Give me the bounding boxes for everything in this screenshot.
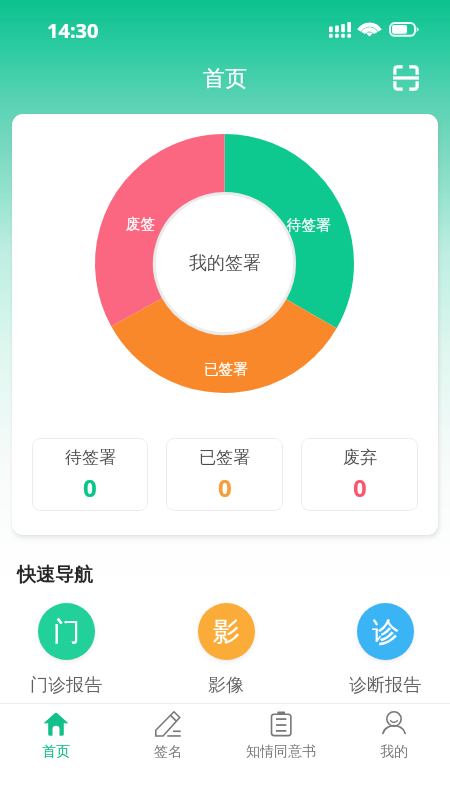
staticText: 待签署: [65, 447, 116, 468]
staticText: 我的签署: [189, 252, 261, 275]
staticText: 影: [213, 615, 240, 649]
staticText: 首页: [203, 65, 247, 93]
staticText: 我的: [380, 743, 408, 761]
button[interactable]: 知情同意书: [224, 704, 337, 761]
staticText: 待签署: [287, 216, 331, 234]
button[interactable]: 废弃: [301, 438, 418, 511]
staticText: 0: [218, 471, 232, 504]
staticText: 0: [83, 471, 97, 504]
staticText: 签名: [154, 743, 182, 761]
staticText: 首页: [42, 743, 70, 761]
button[interactable]: Scan QR code: [393, 65, 419, 91]
button[interactable]: 首页: [0, 704, 112, 761]
staticText: 知情同意书: [246, 743, 316, 761]
staticText: 已签署: [204, 360, 248, 378]
staticText: 门: [53, 615, 80, 649]
staticText: 门诊报告: [30, 674, 102, 697]
button[interactable]: 我的: [337, 704, 450, 761]
button[interactable]: 诊: [330, 603, 440, 697]
staticText: 废签: [126, 215, 155, 233]
staticText: 诊: [372, 615, 399, 649]
button[interactable]: 门: [11, 603, 121, 697]
staticText: 已签署: [199, 447, 250, 468]
staticText: 14:30: [47, 17, 99, 44]
button[interactable]: 签名: [112, 704, 224, 761]
staticText: 影像: [208, 674, 244, 697]
button[interactable]: 待签署: [32, 438, 148, 511]
staticText: 0: [353, 471, 367, 504]
staticText: 废弃: [343, 447, 377, 468]
button[interactable]: 已签署: [166, 438, 283, 511]
staticText: 快速导航: [17, 563, 93, 587]
staticText: 诊断报告: [349, 674, 421, 697]
button[interactable]: 影: [171, 603, 281, 697]
